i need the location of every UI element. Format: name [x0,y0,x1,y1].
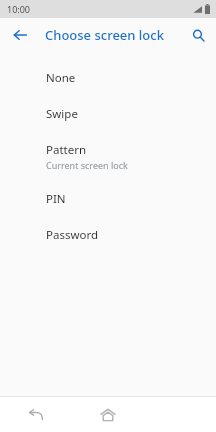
button[interactable]: Search [184,21,212,49]
staticText: Swipe [46,106,78,122]
staticText: None [46,70,76,86]
button[interactable]: PIN [0,181,216,217]
staticText: Choose screen lock [45,26,164,44]
button[interactable]: Back [6,21,34,49]
button[interactable]: Swipe [0,96,216,132]
staticText: 10:00 [7,3,31,15]
button[interactable]: Back [0,397,72,432]
button[interactable]: Pattern [0,132,216,181]
staticText: Password [46,227,99,243]
button[interactable]: None [0,60,216,96]
button[interactable]: Password [0,217,216,253]
button[interactable]: Home [72,397,144,432]
staticText: Current screen lock [46,159,128,171]
staticText: PIN [46,191,66,207]
staticText: Pattern [46,142,87,158]
